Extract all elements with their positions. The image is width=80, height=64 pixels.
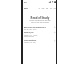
staticText: 9:41	[33, 11, 57, 33]
